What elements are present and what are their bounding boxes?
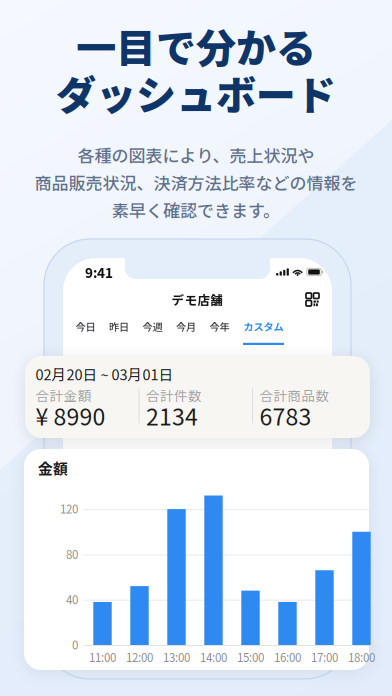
staticText: 15:00 (237, 649, 264, 665)
button[interactable]: 昨日 (109, 313, 129, 348)
staticText: ダッシュボード (56, 63, 336, 121)
staticText: ¥ 8990 (35, 399, 105, 432)
staticText: 今年 (209, 319, 229, 334)
staticText: 一目で分かる (76, 16, 316, 74)
staticText: 0 (72, 636, 78, 653)
staticText: 金額 (38, 457, 68, 479)
button[interactable]: 今月 (176, 313, 196, 348)
staticText: カスタム (243, 319, 283, 334)
staticText: 今月 (176, 319, 196, 334)
staticText: 02月20日 ~ 03月01日 (35, 363, 173, 384)
button[interactable]: 今日 (75, 313, 95, 348)
staticText: 2134 (146, 399, 198, 432)
staticText: 各種の図表により、売上状況や (77, 142, 314, 167)
staticText: 40 (66, 591, 78, 608)
staticText: 9:41 (85, 262, 113, 282)
staticText: 13:00 (163, 649, 190, 665)
staticText: 合計金額 (35, 385, 91, 405)
staticText: 11:00 (89, 649, 116, 665)
staticText: 合計件数 (146, 385, 202, 405)
staticText: 17:00 (311, 649, 338, 665)
button[interactable]: QRコード (301, 288, 324, 311)
button[interactable]: 今週 (142, 313, 162, 348)
staticText: 昨日 (109, 319, 129, 334)
staticText: 16:00 (274, 649, 301, 665)
staticText: デモ店舗 (171, 290, 223, 309)
staticText: 素早く確認できます。 (112, 197, 280, 222)
staticText: 合計商品数 (259, 385, 329, 405)
staticText: 12:00 (126, 649, 153, 665)
button[interactable]: カスタム (243, 313, 284, 348)
staticText: 今週 (142, 319, 162, 334)
staticText: 14:00 (200, 649, 227, 665)
staticText: 商品販売状況、決済方法比率などの情報を (34, 170, 357, 194)
staticText: 今日 (75, 319, 95, 334)
staticText: 120 (60, 500, 78, 517)
staticText: 18:00 (348, 649, 375, 665)
staticText: 80 (66, 546, 78, 562)
staticText: 6783 (259, 399, 311, 432)
button[interactable]: 今年 (209, 313, 229, 348)
